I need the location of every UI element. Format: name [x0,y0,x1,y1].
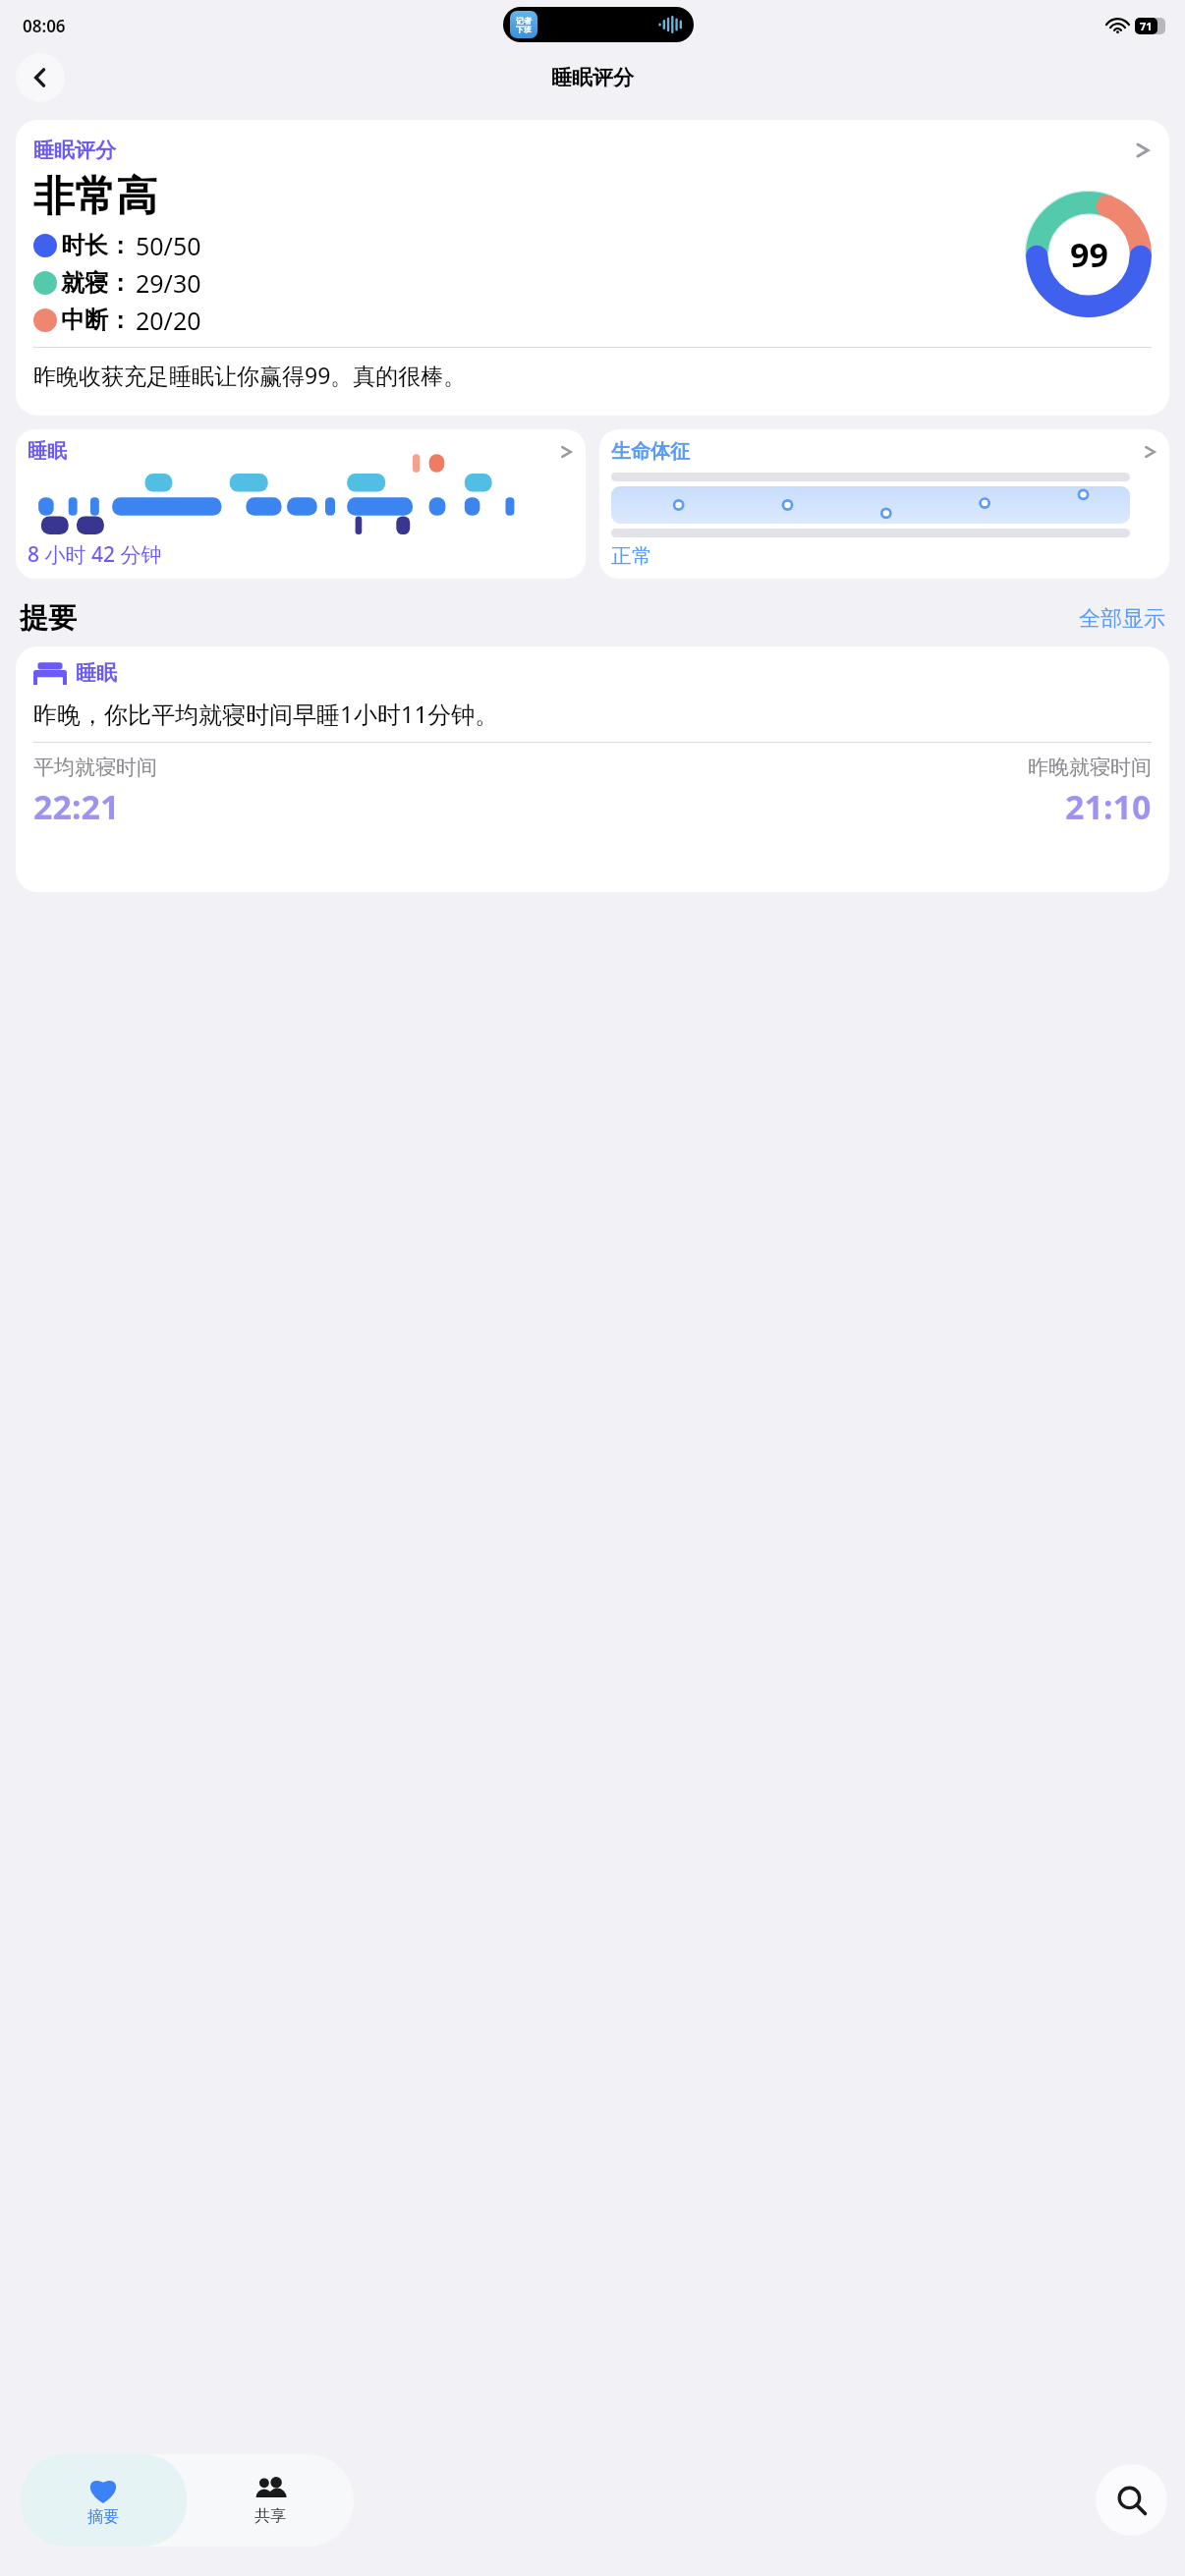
staticText: 就寝： [61,268,132,298]
staticText: 记者 下班 [516,16,532,34]
staticText: 提要 [20,600,77,637]
staticText: 生命体征 [611,439,690,464]
staticText: 时长： [61,231,132,260]
button[interactable]: Search [1096,2464,1167,2536]
staticText: 50/50 [136,229,201,262]
button[interactable]: 摘要 [20,2454,187,2547]
button[interactable]: 共享 [187,2454,354,2547]
staticText: 中断： [61,306,132,335]
staticText: 睡眠评分 [33,138,116,163]
button[interactable]: 睡眠 [16,646,1169,892]
staticText: 摘要 [87,2507,119,2527]
staticText: 21:10 [1065,784,1152,829]
staticText: 非常高 [33,171,157,223]
staticText: 正常 [611,543,652,569]
staticText: 08:06 [23,15,66,37]
button[interactable]: 全部显示 [1079,605,1165,633]
staticText: 昨晚收获充足睡眠让你赢得99。真的很棒。 [33,360,467,390]
staticText: 睡眠 [28,439,67,464]
staticText: 20/20 [136,304,201,337]
staticText: 睡眠 [76,660,117,686]
staticText: 昨晚，你比平均就寝时间早睡1小时11分钟。 [33,698,499,730]
staticText: 29/30 [136,266,201,300]
staticText: 平均就寝时间 [33,755,157,780]
staticText: 全部显示 [1079,605,1165,633]
staticText: 99 [1070,232,1108,277]
button[interactable]: Back [16,53,65,102]
staticText: 昨晚就寝时间 [1028,755,1152,780]
staticText: 睡眠评分 [551,65,634,90]
staticText: 共享 [254,2506,286,2526]
button[interactable]: 睡眠评分 [16,120,1169,416]
button[interactable]: 睡眠 [16,429,586,579]
staticText: 71 [1140,19,1153,33]
button[interactable]: 生命体征 [599,429,1169,579]
staticText: 22:21 [33,784,120,829]
staticText: 8 小时 42 分钟 [28,540,162,569]
